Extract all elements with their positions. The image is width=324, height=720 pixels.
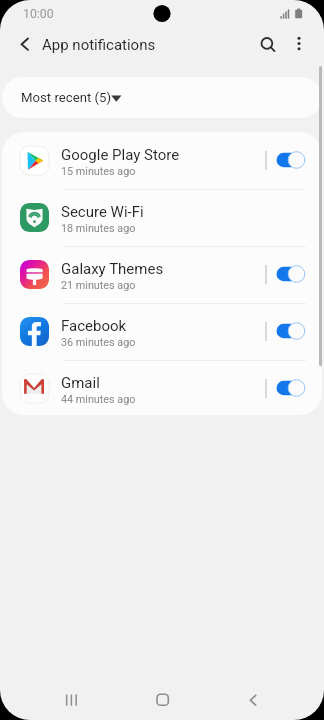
staticText: Google Play Store <box>61 146 180 164</box>
staticText: 44 minutes ago <box>61 393 136 406</box>
button[interactable]: Search <box>250 27 284 61</box>
button[interactable]: On <box>274 149 308 171</box>
button[interactable]: Back <box>231 685 275 711</box>
button[interactable]: On <box>274 377 308 399</box>
button[interactable]: On <box>274 263 308 285</box>
staticText: 15 minutes ago <box>61 165 136 178</box>
button[interactable]: Secure Wi-Fi <box>2 189 322 246</box>
staticText: Most recent (5) <box>21 90 112 105</box>
staticText: Facebook <box>61 317 127 335</box>
staticText: Gmail <box>61 374 100 392</box>
button[interactable]: On <box>274 320 308 342</box>
button[interactable]: Recents <box>49 685 93 711</box>
staticText: 21 minutes ago <box>61 279 136 292</box>
button[interactable]: More options <box>282 27 316 61</box>
button[interactable]: Galaxy Themes <box>2 246 322 303</box>
staticText: App notifications <box>42 36 156 54</box>
staticText: 36 minutes ago <box>61 336 136 349</box>
button[interactable]: Most recent (5) <box>2 77 322 118</box>
button[interactable]: Back <box>8 27 42 61</box>
button[interactable]: Gmail <box>2 360 322 415</box>
staticText: 10:00 <box>23 7 54 21</box>
staticText: Secure Wi-Fi <box>61 203 144 221</box>
staticText: Galaxy Themes <box>61 260 164 278</box>
button[interactable]: Google Play Store <box>2 132 322 189</box>
staticText: 18 minutes ago <box>61 222 136 235</box>
button[interactable]: Facebook <box>2 303 322 360</box>
button[interactable]: Home <box>140 685 184 711</box>
